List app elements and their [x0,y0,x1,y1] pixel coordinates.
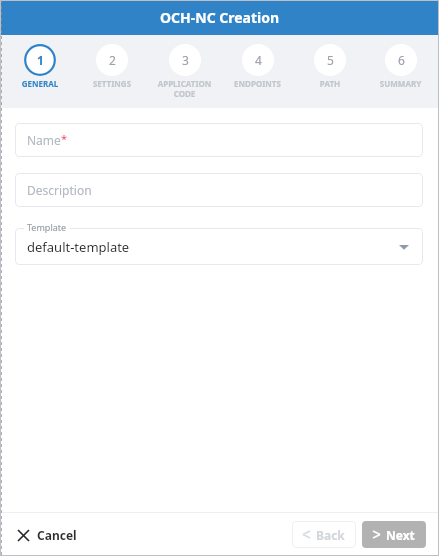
staticText: 4 [255,52,262,68]
staticText: SUMMARY [366,78,435,89]
button[interactable]: 4 [221,44,294,89]
staticText: 6 [398,52,405,68]
other: Open template dropdown [399,242,409,252]
staticText: default-template [27,238,130,256]
button[interactable]: Cancel [16,521,79,549]
staticText: GENERAL [4,78,76,89]
staticText: Cancel [37,527,77,543]
button[interactable]: Next [362,521,426,548]
staticText: SETTINGS [76,78,148,89]
button[interactable]: 3 [148,44,221,99]
staticText: OCH-NC Creation [160,8,280,27]
button[interactable]: 5 [294,44,366,89]
staticText: PATH [294,78,366,89]
button[interactable]: Name [15,123,423,157]
staticText: * [61,131,68,146]
button[interactable]: 1 [4,44,76,89]
staticText: APPLICATION CODE [148,78,221,99]
button[interactable] [15,228,423,265]
button[interactable]: 6 [366,44,435,89]
staticText: ENDPOINTS [221,78,294,89]
staticText: Description [27,182,92,198]
staticText: Back [316,527,345,543]
staticText: Next [386,527,415,543]
staticText: 2 [109,52,116,68]
staticText: 3 [182,52,189,68]
staticText: Template [27,221,67,233]
button[interactable]: 2 [76,44,148,89]
button[interactable]: Description [15,173,423,207]
staticText: 1 [37,52,44,68]
staticText: Name [27,132,61,148]
staticText: 5 [327,52,334,68]
button[interactable]: Back [292,521,356,548]
